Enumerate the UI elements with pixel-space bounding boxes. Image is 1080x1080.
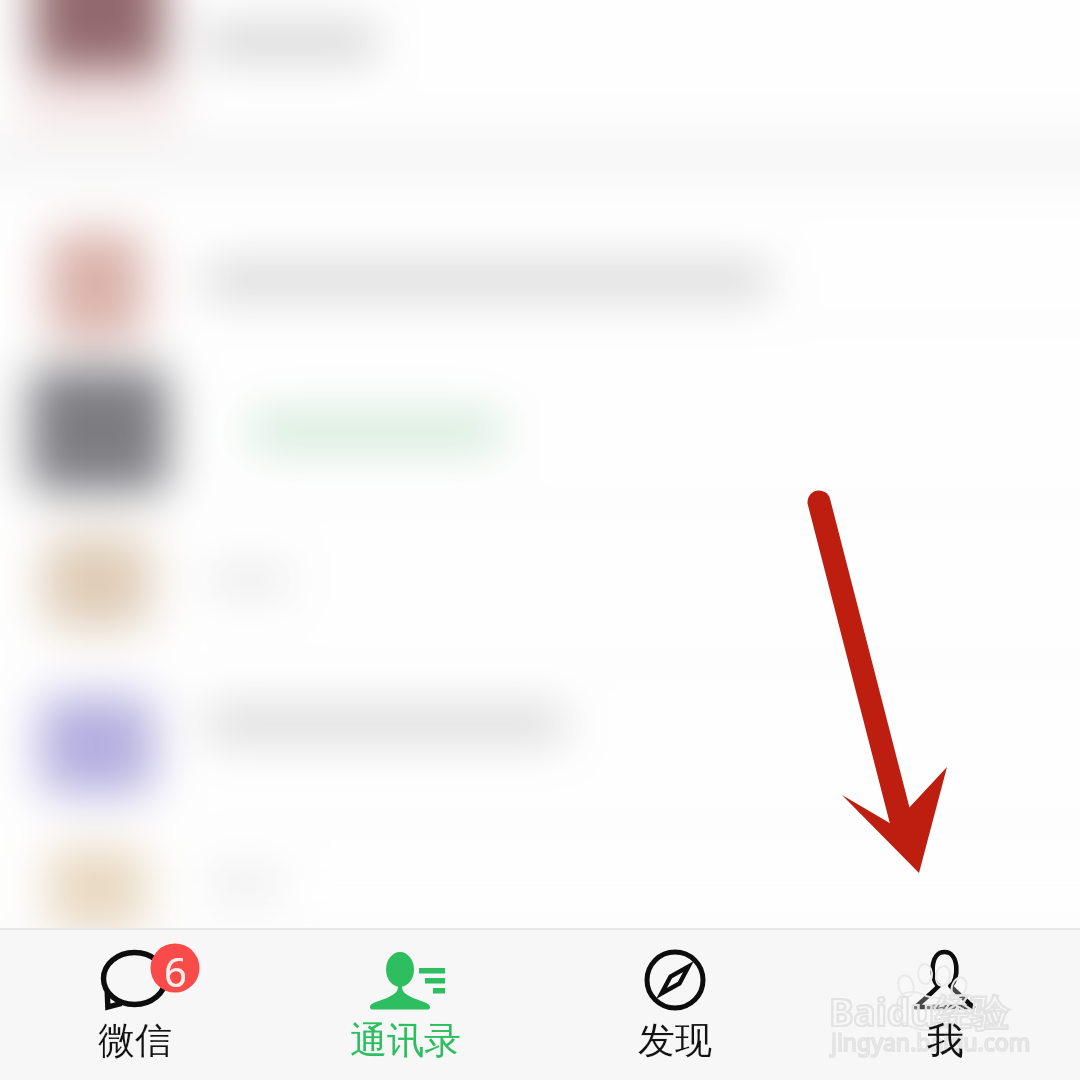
staticText: 通讯录 [350,1017,461,1064]
staticText: 我 [927,1017,964,1064]
staticText: jingyan.baidu.com [831,1026,1031,1057]
staticText: Baidu经验 [829,986,1009,1037]
staticText: 微信 [98,1017,172,1064]
staticText: Baidu经验 [829,986,1009,1037]
staticText: jingyan.baidu.com [831,1026,1031,1057]
button[interactable]: Discover [540,930,810,1080]
staticText: 6 [164,944,187,992]
button[interactable]: WeChat [0,930,270,1080]
staticText: 我 [927,1017,964,1064]
button[interactable]: Me [810,930,1080,1080]
button[interactable]: Contacts [270,930,540,1080]
staticText: 发现 [638,1017,712,1064]
